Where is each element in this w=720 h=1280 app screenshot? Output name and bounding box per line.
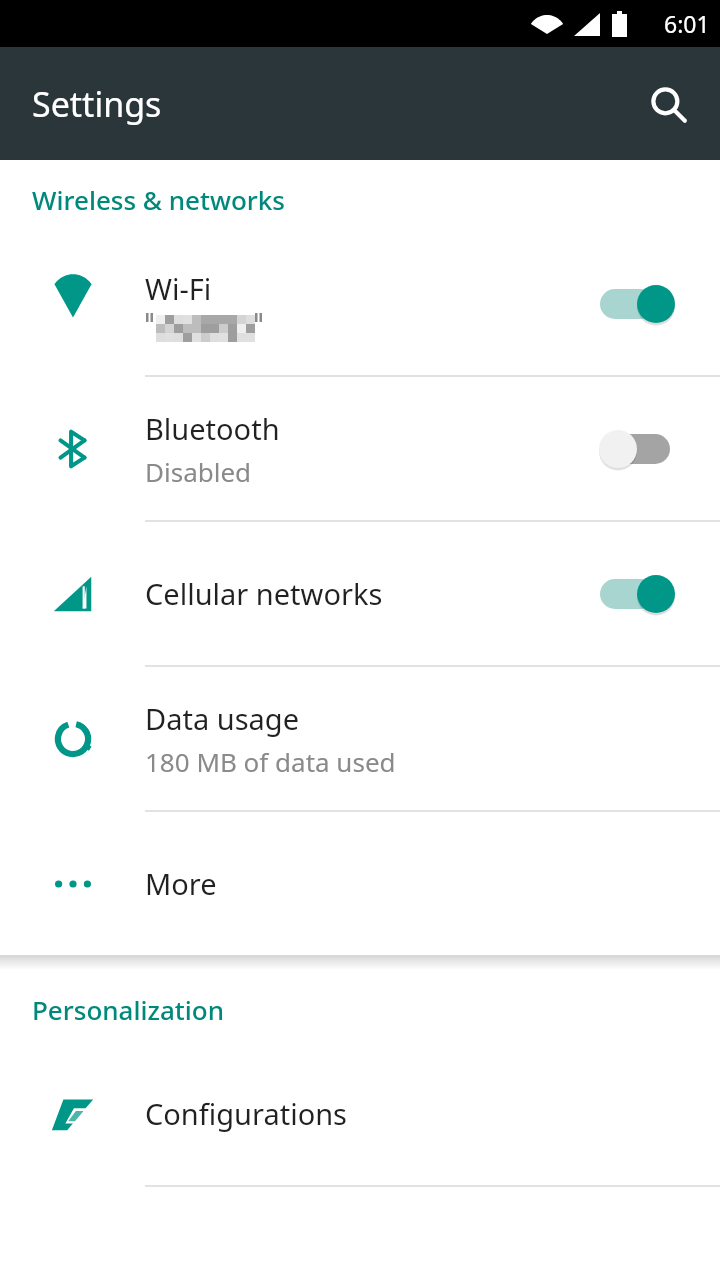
staticText: Wi-Fi	[145, 269, 212, 308]
button[interactable]: Bluetooth	[0, 377, 720, 520]
staticText: Settings	[32, 81, 162, 127]
staticText: Data usage	[145, 699, 299, 738]
staticText: Cellular networks	[145, 574, 383, 613]
staticText: Bluetooth	[145, 409, 280, 448]
staticText: Personalization	[32, 992, 224, 1027]
staticText: Wireless & networks	[32, 182, 286, 217]
button[interactable]: Wi-Fi	[0, 232, 720, 375]
staticText: Configurations	[145, 1094, 347, 1133]
button[interactable]: Toggle off	[600, 423, 672, 475]
staticText: More	[145, 864, 217, 903]
button[interactable]: Configurations	[0, 1042, 720, 1185]
staticText: Disabled	[145, 454, 252, 489]
button[interactable]: Search	[636, 72, 700, 136]
staticText: 6:01	[664, 8, 710, 39]
button[interactable]: Toggle on	[600, 568, 672, 620]
button[interactable]: More	[0, 812, 720, 955]
button[interactable]: Data usage	[0, 667, 720, 810]
button[interactable]: Toggle on	[600, 278, 672, 330]
button[interactable]: Cellular networks	[0, 522, 720, 665]
staticText: 180 MB of data used	[145, 744, 396, 779]
